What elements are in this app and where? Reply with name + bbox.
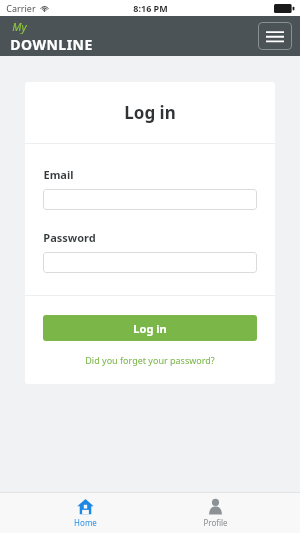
button[interactable]: Did you forget your password? (43, 354, 257, 366)
staticText: Password (43, 230, 96, 245)
button[interactable] (43, 252, 257, 273)
staticText: Profile (203, 517, 228, 528)
staticText: Home (74, 517, 97, 528)
staticText: Carrier (6, 2, 36, 14)
staticText: DOWNLINE (10, 35, 93, 54)
staticText: 8:16 PM (133, 2, 168, 14)
staticText: Email (43, 167, 74, 182)
button[interactable] (43, 189, 257, 210)
staticText: Did you forget your password? (85, 354, 215, 366)
staticText: My (12, 19, 27, 34)
button[interactable]: Profile (170, 493, 260, 533)
staticText: Log in (133, 321, 167, 336)
button[interactable]: Home (40, 493, 130, 533)
staticText: Log in (124, 101, 176, 124)
button[interactable]: Log in (43, 315, 257, 341)
button[interactable]: Menu (258, 22, 292, 50)
